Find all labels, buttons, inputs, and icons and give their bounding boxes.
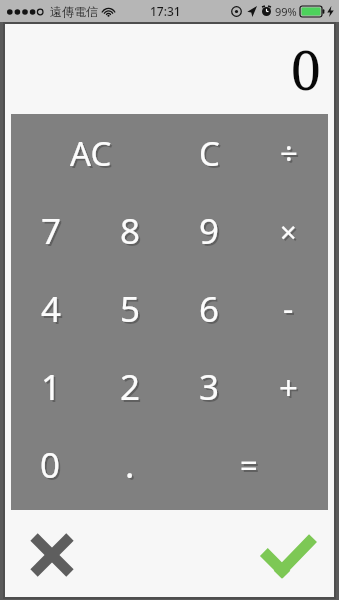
button[interactable]: AC <box>11 114 170 192</box>
staticText: + <box>279 365 298 410</box>
staticText: = <box>242 446 260 488</box>
staticText: 17:31 <box>150 3 181 19</box>
button[interactable]: . <box>90 426 169 504</box>
button[interactable]: 7 <box>11 192 91 270</box>
staticText: × <box>282 214 299 253</box>
staticText: + <box>281 367 300 412</box>
staticText: C <box>199 131 220 176</box>
staticText: ÷ <box>282 134 300 176</box>
staticText: 2 <box>122 365 143 413</box>
staticText: 9 <box>201 209 222 257</box>
staticText: C <box>201 133 222 178</box>
button[interactable]: Cancel <box>23 526 81 584</box>
staticText: 9 <box>199 207 220 255</box>
button[interactable]: 9 <box>170 192 249 270</box>
staticText: 8 <box>120 207 141 255</box>
button[interactable]: 2 <box>91 348 170 426</box>
staticText: . <box>127 443 137 491</box>
staticText: 6 <box>201 287 222 335</box>
staticText: 0 <box>290 32 321 106</box>
staticText: 4 <box>43 287 64 335</box>
staticText: 6 <box>199 285 220 333</box>
staticText: 3 <box>201 365 222 413</box>
staticText: 2 <box>120 363 141 411</box>
staticText: 4 <box>41 285 62 333</box>
staticText: 遠傳電信 <box>50 4 98 19</box>
button[interactable]: 5 <box>91 270 170 348</box>
staticText: 0 <box>40 441 61 489</box>
staticText: ÷ <box>280 132 298 174</box>
button[interactable]: 0 <box>11 426 90 504</box>
staticText: 1 <box>43 365 64 413</box>
button[interactable]: = <box>169 426 328 504</box>
staticText: 0 <box>42 443 63 491</box>
staticText: 7 <box>43 209 64 257</box>
staticText: AC <box>72 133 114 178</box>
staticText: 1 <box>41 363 62 411</box>
staticText: 99% <box>275 4 297 19</box>
button[interactable]: 8 <box>91 192 170 270</box>
button[interactable]: 4 <box>11 270 91 348</box>
staticText: 5 <box>122 287 143 335</box>
button[interactable]: × <box>249 192 328 270</box>
staticText: 3 <box>199 363 220 411</box>
button[interactable]: Confirm <box>258 525 318 585</box>
staticText: . <box>125 441 135 489</box>
staticText: AC <box>70 131 112 176</box>
staticText: 7 <box>41 207 62 255</box>
staticText: - <box>285 289 296 333</box>
staticText: × <box>280 212 297 251</box>
button[interactable]: ÷ <box>249 114 328 192</box>
button[interactable]: + <box>249 348 328 426</box>
button[interactable]: 1 <box>11 348 91 426</box>
button[interactable]: 3 <box>170 348 249 426</box>
staticText: 8 <box>122 209 143 257</box>
staticText: 5 <box>120 285 141 333</box>
button[interactable]: - <box>249 270 328 348</box>
button[interactable]: C <box>170 114 249 192</box>
staticText: - <box>283 287 294 331</box>
staticText: = <box>240 444 258 486</box>
button[interactable]: 6 <box>170 270 249 348</box>
